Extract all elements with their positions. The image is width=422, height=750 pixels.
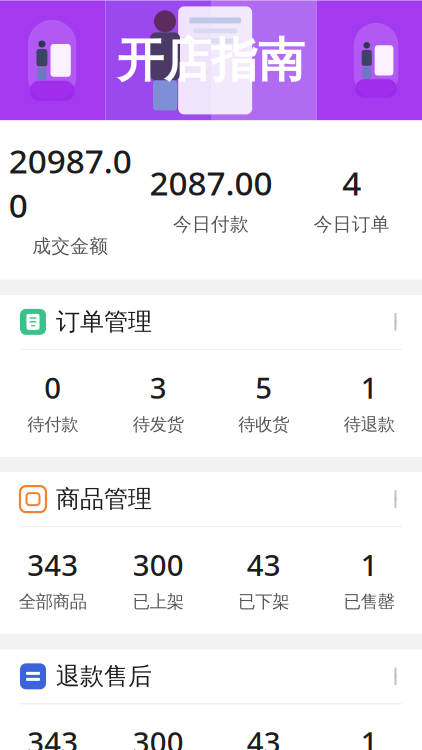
staticText: 3 [150,368,167,407]
button[interactable]: 43 [211,720,316,750]
staticText: 退款售后 [56,662,152,691]
button[interactable]: 退款售后 [0,649,422,703]
button[interactable]: 订单管理 [0,295,422,349]
button[interactable]: 1 [316,366,422,437]
staticText: 已售罄 [344,591,395,612]
staticText: 全部商品 [19,591,87,612]
button[interactable]: 20987.00 [0,138,141,258]
button[interactable]: 2087.00 [141,160,281,236]
staticText: 待收货 [238,414,289,435]
staticText: 待发货 [133,414,184,435]
button[interactable]: 43 [211,543,316,614]
staticText: 1 [361,722,378,750]
staticText: 订单管理 [56,307,152,337]
staticText: 商品管理 [56,484,152,514]
staticText: 43 [247,545,281,584]
staticText: 343 [27,545,78,584]
button[interactable]: 0 [0,366,105,437]
staticText: 300 [133,545,184,584]
staticText: 已下架 [238,591,289,612]
staticText: 43 [247,722,281,750]
staticText: 4 [342,160,361,205]
button[interactable]: 1 [316,720,422,750]
staticText: 已上架 [133,591,184,612]
button[interactable]: 300 [105,543,211,614]
button[interactable]: 商品管理 [0,472,422,526]
staticText: 开店指南 [117,32,305,89]
staticText: 1 [361,545,378,584]
staticText: 20987.00 [9,138,132,227]
button[interactable]: 343 [0,720,105,750]
staticText: 待付款 [27,414,78,435]
button[interactable]: 4 [281,160,422,236]
button[interactable]: 1 [316,543,422,614]
staticText: 300 [133,722,184,750]
button[interactable]: 300 [105,720,211,750]
staticText: 今日付款 [173,213,249,236]
staticText: 0 [44,368,61,407]
staticText: 待退款 [344,414,395,435]
staticText: 5 [255,368,272,407]
button[interactable]: 343 [0,543,105,614]
staticText: 2087.00 [149,160,272,205]
staticText: 343 [27,722,78,750]
staticText: 今日订单 [314,213,390,236]
staticText: 1 [361,368,378,407]
button[interactable]: 5 [211,366,316,437]
button[interactable]: 3 [105,366,211,437]
staticText: 成交金额 [32,235,108,258]
